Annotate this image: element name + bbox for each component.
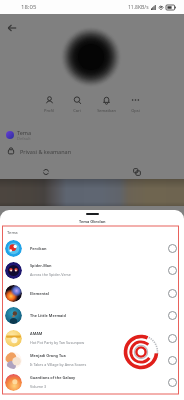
button[interactable]: Tema <box>0 127 184 143</box>
staticText: Tema <box>7 230 18 236</box>
staticText: Volume 3 <box>30 384 47 389</box>
staticText: Opsi <box>131 108 140 113</box>
staticText: Percikan <box>30 246 47 251</box>
staticText: It Takes a Village by Anna Soares <box>30 362 87 367</box>
staticText: Across the Spider-Verse <box>30 272 71 277</box>
button[interactable]: Spider-Man <box>0 259 184 281</box>
staticText: Menjadi Orang Tua <box>30 353 66 358</box>
button[interactable]: Profil <box>36 96 62 113</box>
button[interactable]: Cari <box>64 96 90 113</box>
button[interactable]: Privasi & keamanan <box>0 143 184 159</box>
button[interactable]: Menjadi Orang Tua <box>0 349 184 371</box>
staticText: Guardians of the Galaxy <box>30 375 76 380</box>
staticText: Cari <box>73 108 81 113</box>
staticText: Profil <box>44 108 54 113</box>
staticText: The Little Mermaid <box>30 313 66 318</box>
button[interactable]: AMAM <box>0 327 184 349</box>
staticText: 11.8KB/s <box>128 4 149 11</box>
staticText: Default <box>17 136 31 141</box>
staticText: AMAM <box>30 331 43 336</box>
button[interactable]: Percikan <box>0 237 184 259</box>
staticText: Hot Pot Party by Tan Susunpow <box>30 340 85 345</box>
staticText: Sematkan <box>97 108 116 113</box>
staticText: Spider-Man <box>30 263 52 268</box>
button[interactable]: Back <box>4 20 20 36</box>
button[interactable]: The Little Mermaid <box>0 304 184 326</box>
staticText: Tema <box>17 129 32 136</box>
button[interactable]: Guardians of the Galaxy <box>0 371 184 393</box>
staticText: 18:05 <box>21 3 37 11</box>
staticText: Tema Obrolan <box>79 219 106 224</box>
button[interactable]: Elemental <box>0 282 184 304</box>
staticText: Privasi & keamanan <box>20 148 72 155</box>
staticText: Elemental <box>30 291 50 296</box>
button[interactable]: Opsi <box>122 96 148 113</box>
button[interactable]: Sematkan <box>93 96 119 113</box>
